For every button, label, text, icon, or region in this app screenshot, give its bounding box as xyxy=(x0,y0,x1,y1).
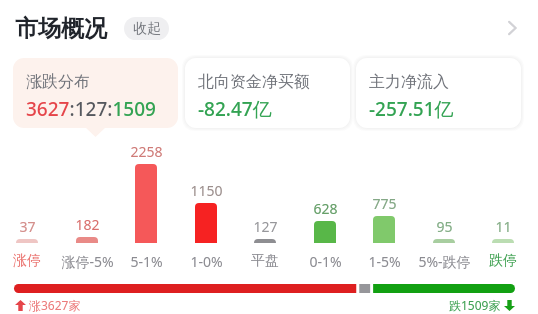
staticText: 跌1509家 xyxy=(449,297,501,313)
staticText: 182 xyxy=(75,215,100,234)
staticText: 北向资金净买额 xyxy=(198,72,310,92)
staticText: 95 xyxy=(436,217,453,236)
staticText: -82.47亿 xyxy=(198,96,272,122)
button[interactable]: 主力净流入 xyxy=(356,58,521,128)
staticText: 1-5% xyxy=(368,252,401,271)
staticText: 5%-跌停 xyxy=(418,252,471,271)
staticText: 0-1% xyxy=(309,252,342,271)
staticText: 3627:127:1509 xyxy=(26,96,156,122)
staticText: 1-0% xyxy=(190,252,223,271)
staticText: 跌停 xyxy=(489,252,517,270)
staticText: 涨停-5% xyxy=(61,252,114,271)
staticText: 127 xyxy=(253,217,278,236)
staticText: 涨跌分布 xyxy=(26,72,90,92)
staticText: 2258 xyxy=(130,142,163,161)
staticText: 628 xyxy=(313,199,338,218)
button[interactable]: 北向资金净买额 xyxy=(185,58,350,128)
staticText: 市场概况 xyxy=(15,14,107,43)
staticText: 涨停 xyxy=(13,252,41,270)
button[interactable]: More xyxy=(498,14,526,42)
staticText: 5-1% xyxy=(130,252,163,271)
staticText: 平盘 xyxy=(251,252,279,270)
staticText: 涨3627家 xyxy=(29,297,81,313)
staticText: -257.51亿 xyxy=(369,96,454,122)
staticText: 1150 xyxy=(190,181,223,200)
button[interactable]: 收起 xyxy=(124,17,169,40)
staticText: 主力净流入 xyxy=(369,72,449,92)
staticText: 收起 xyxy=(133,20,161,38)
staticText: 775 xyxy=(372,194,397,213)
staticText: 11 xyxy=(495,217,512,236)
staticText: 37 xyxy=(19,217,36,236)
button[interactable]: 涨跌分布 xyxy=(13,58,178,128)
